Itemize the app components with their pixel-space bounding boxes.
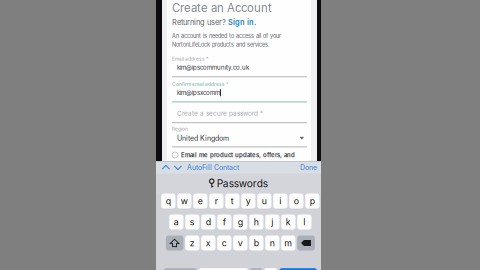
staticText: v — [238, 238, 243, 248]
staticText: y — [246, 196, 251, 206]
staticText: h — [254, 217, 259, 227]
button[interactable]: p — [305, 193, 319, 208]
button[interactable]: z — [185, 235, 199, 250]
staticText: q — [166, 196, 171, 206]
staticText: d — [206, 217, 211, 227]
staticText: Email address * — [172, 56, 208, 62]
staticText: United Kingdom — [177, 134, 229, 142]
staticText: e — [198, 196, 203, 206]
staticText: i — [279, 196, 281, 206]
button[interactable]: y — [241, 193, 255, 208]
button[interactable]: t — [225, 193, 239, 208]
staticText: r — [215, 196, 218, 206]
button[interactable]: Sign in. — [228, 18, 256, 27]
button[interactable]: u — [257, 193, 271, 208]
button[interactable]: i — [273, 193, 287, 208]
button[interactable]: Next field — [172, 161, 184, 173]
button[interactable]: j — [265, 214, 279, 229]
button[interactable]: k — [281, 214, 295, 229]
button[interactable]: Previous field — [160, 161, 172, 173]
button[interactable]: n — [265, 235, 279, 250]
staticText: NortonLifeLock products and services. — [172, 41, 270, 48]
button[interactable]: Passwords — [209, 177, 268, 190]
button[interactable]: Dictation — [264, 268, 278, 270]
button[interactable]: Numbers — [164, 268, 197, 270]
staticText: g — [238, 217, 243, 227]
button[interactable]: o — [289, 193, 303, 208]
staticText: Sign in. — [228, 18, 256, 27]
staticText: j — [271, 217, 273, 227]
staticText: o — [294, 196, 299, 206]
button[interactable]: AutoFill Contact — [187, 163, 239, 172]
button[interactable]: Go — [279, 268, 317, 270]
staticText: An account is needed to access all of yo… — [172, 33, 281, 39]
button[interactable]: Shift — [166, 235, 183, 250]
button[interactable]: Done — [300, 163, 317, 172]
staticText: c — [222, 238, 227, 248]
staticText: Create an Account — [172, 1, 272, 15]
staticText: k — [286, 217, 291, 227]
staticText: n — [270, 238, 275, 248]
staticText: w — [181, 196, 188, 206]
button[interactable]: s — [185, 214, 199, 229]
staticText: kim@ipscommunity.co.uk — [177, 64, 249, 71]
staticText: x — [206, 238, 211, 248]
button[interactable]: e — [193, 193, 207, 208]
staticText: s — [190, 217, 195, 227]
staticText: Region — [172, 126, 188, 132]
button[interactable]: f — [217, 214, 231, 229]
button[interactable]: r — [209, 193, 223, 208]
button[interactable]: x — [201, 235, 215, 250]
button[interactable]: Delete — [297, 235, 315, 250]
staticText: p — [310, 196, 315, 206]
staticText: u — [262, 196, 267, 206]
staticText: kim@ipsxcomm — [177, 89, 220, 96]
button[interactable]: h — [249, 214, 263, 229]
button[interactable]: w — [177, 193, 191, 208]
button[interactable]: b — [249, 235, 263, 250]
staticText: z — [190, 238, 195, 248]
button[interactable]: v — [233, 235, 247, 250]
staticText: b — [254, 238, 259, 248]
staticText: AutoFill Contact — [187, 163, 239, 172]
button[interactable]: Emoji — [250, 268, 262, 270]
button[interactable]: a — [169, 214, 183, 229]
staticText: Email me product updates, offers, and — [181, 151, 295, 159]
button[interactable]: q — [161, 193, 175, 208]
staticText: t — [231, 196, 234, 206]
staticText: Create a secure password * — [177, 109, 263, 117]
staticText: f — [223, 217, 226, 227]
button[interactable]: g — [233, 214, 247, 229]
staticText: Passwords — [217, 177, 268, 190]
staticText: l — [303, 217, 305, 227]
button[interactable]: space — [199, 268, 248, 270]
staticText: Returning user? — [172, 18, 228, 27]
button[interactable]: d — [201, 214, 215, 229]
button[interactable]: m — [281, 235, 295, 250]
button[interactable]: c — [217, 235, 231, 250]
staticText: Confirm email address * — [172, 81, 228, 87]
staticText: m — [284, 238, 292, 248]
button[interactable]: l — [297, 214, 311, 229]
staticText: a — [174, 217, 179, 227]
staticText: Done — [300, 163, 317, 172]
